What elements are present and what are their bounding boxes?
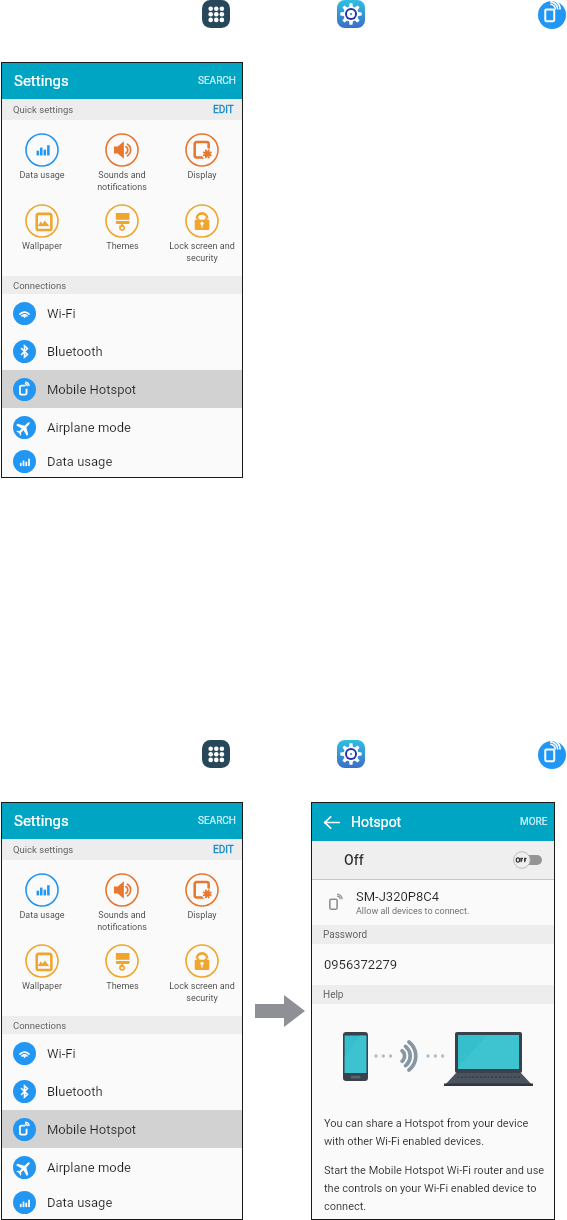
staticText: Bluetooth: [47, 344, 103, 359]
button[interactable]: Wallpaper: [2, 191, 82, 252]
staticText: Settings: [14, 72, 69, 90]
button[interactable]: MORE: [520, 816, 548, 828]
button[interactable]: Data usage: [2, 860, 82, 921]
button[interactable]: Mobile Hotspot: [2, 1110, 242, 1148]
button[interactable]: Mobile Hotspot: [538, 1, 566, 29]
staticText: Mobile Hotspot: [47, 382, 137, 397]
button[interactable]: Wi-Fi: [2, 1034, 242, 1072]
button[interactable]: Data usage: [2, 1186, 242, 1219]
button[interactable]: Settings: [337, 740, 365, 768]
button[interactable]: Bluetooth: [2, 332, 242, 370]
staticText: SEARCH: [198, 815, 236, 827]
button[interactable]: SEARCH: [198, 815, 236, 827]
button[interactable]: Lock screen and security: [162, 191, 242, 263]
staticText: Quick settings: [13, 104, 74, 115]
button[interactable]: Back: [323, 814, 340, 831]
staticText: Connections: [13, 1020, 67, 1031]
button[interactable]: Off: [312, 841, 554, 879]
button[interactable]: Airplane mode: [2, 1148, 242, 1186]
staticText: Display: [187, 170, 217, 181]
staticText: Start the Mobile Hotspot Wi-Fi router an…: [324, 1164, 546, 1213]
staticText: Help: [323, 989, 344, 1001]
staticText: Settings: [14, 812, 69, 830]
button[interactable]: Data usage: [2, 446, 242, 477]
button[interactable]: Sounds and notifications: [82, 120, 162, 191]
staticText: EDIT: [213, 104, 234, 116]
button[interactable]: Hotspot off toggle: [513, 851, 542, 869]
staticText: Airplane mode: [47, 1160, 131, 1175]
button[interactable]: Mobile Hotspot: [538, 741, 566, 769]
button[interactable]: Display: [162, 860, 242, 921]
staticText: Quick settings: [13, 844, 74, 855]
button[interactable]: Display: [162, 120, 242, 181]
staticText: Wi-Fi: [47, 306, 76, 321]
button[interactable]: EDIT: [213, 844, 234, 856]
staticText: Lock screen and security: [169, 981, 235, 1003]
button[interactable]: Themes: [82, 931, 162, 992]
button[interactable]: SEARCH: [198, 75, 236, 87]
button[interactable]: Sounds and notifications: [82, 860, 162, 931]
button[interactable]: Apps: [202, 740, 230, 768]
staticText: EDIT: [213, 844, 234, 856]
staticText: Lock screen and security: [169, 241, 235, 263]
staticText: Data usage: [47, 1195, 113, 1210]
staticText: Connections: [13, 280, 67, 291]
staticText: Sounds and notifications: [97, 910, 147, 931]
staticText: Display: [187, 910, 217, 921]
staticText: Hotspot: [351, 814, 402, 830]
button[interactable]: Settings: [337, 0, 365, 28]
staticText: Data usage: [47, 454, 113, 469]
button[interactable]: Mobile Hotspot: [2, 370, 242, 408]
staticText: Wallpaper: [22, 981, 62, 992]
button[interactable]: Airplane mode: [2, 408, 242, 446]
button[interactable]: 0956372279: [312, 944, 554, 985]
staticText: You can share a Hotspot from your device…: [324, 1117, 546, 1148]
staticText: MORE: [520, 816, 548, 828]
button[interactable]: EDIT: [213, 104, 234, 116]
staticText: Allow all devices to connect.: [356, 906, 470, 917]
button[interactable]: Bluetooth: [2, 1072, 242, 1110]
button[interactable]: Wi-Fi: [2, 294, 242, 332]
staticText: Airplane mode: [47, 420, 131, 435]
button[interactable]: Apps: [202, 0, 230, 28]
staticText: Data usage: [19, 910, 65, 921]
staticText: Themes: [106, 981, 139, 992]
staticText: Bluetooth: [47, 1084, 103, 1099]
button[interactable]: Data usage: [2, 120, 82, 181]
staticText: Wallpaper: [22, 241, 62, 252]
staticText: Themes: [106, 241, 139, 252]
staticText: Password: [323, 929, 368, 941]
button[interactable]: Lock screen and security: [162, 931, 242, 1003]
staticText: Data usage: [19, 170, 65, 181]
staticText: Mobile Hotspot: [47, 1122, 137, 1137]
staticText: Off: [344, 852, 364, 868]
button[interactable]: Wallpaper: [2, 931, 82, 992]
staticText: SEARCH: [198, 75, 236, 87]
staticText: SM-J320P8C4: [356, 889, 440, 904]
staticText: Sounds and notifications: [97, 170, 147, 191]
button[interactable]: Themes: [82, 191, 162, 252]
staticText: 0956372279: [324, 957, 398, 972]
staticText: Wi-Fi: [47, 1046, 76, 1061]
button[interactable]: SM-J320P8C4: [312, 880, 554, 925]
